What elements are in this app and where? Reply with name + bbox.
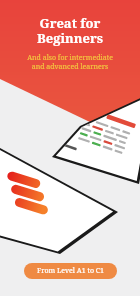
staticText: Great for Beginners — [37, 14, 103, 47]
staticText: And also for intermediate and advanced l… — [27, 53, 113, 71]
staticText: From Level A1 to C1 — [37, 266, 104, 276]
button[interactable]: From Level A1 to C1 — [24, 263, 117, 279]
